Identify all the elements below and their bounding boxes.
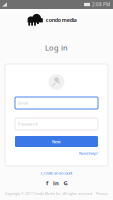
- staticText: Create an account: [41, 170, 72, 176]
- staticText: condo media: [46, 16, 77, 24]
- button[interactable]: LinkedIn: [53, 180, 59, 186]
- staticText: f: [46, 179, 48, 187]
- staticText: Need help?: [79, 150, 98, 156]
- staticText: 2:08 PM: [92, 1, 110, 8]
- staticText: Password: [18, 121, 38, 127]
- staticText: Next: [52, 139, 61, 144]
- button[interactable]: Need help?: [15, 147, 98, 156]
- staticText: G: [63, 179, 67, 187]
- staticText: Copyright © 2017 Condo Media Inc. All ri…: [5, 192, 108, 196]
- staticText: Email: [18, 100, 28, 106]
- staticText: Log in: [45, 42, 68, 53]
- button[interactable]: Next: [15, 136, 98, 147]
- staticText: in: [53, 179, 59, 187]
- button[interactable]: Create an account: [41, 166, 72, 180]
- button[interactable]: Google: [63, 180, 68, 186]
- button[interactable]: Facebook: [45, 180, 49, 186]
